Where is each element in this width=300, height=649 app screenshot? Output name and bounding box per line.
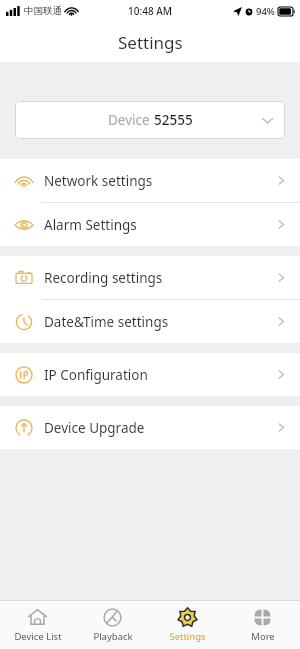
button[interactable]: More <box>225 601 300 649</box>
button[interactable]: Recording settings <box>0 256 300 299</box>
staticText: Recording settings <box>44 269 163 287</box>
button[interactable]: Playback <box>75 601 150 649</box>
staticText: Device Upgrade <box>44 419 145 437</box>
button[interactable]: Alarm Settings <box>0 203 300 246</box>
staticText: More <box>251 630 275 643</box>
staticText: Settings <box>118 31 183 54</box>
staticText: Alarm Settings <box>44 216 137 234</box>
staticText: 94% <box>256 5 275 18</box>
button[interactable]: IP Configuration <box>0 353 300 396</box>
staticText: Playback <box>93 630 133 643</box>
button[interactable]: Settings <box>150 601 225 649</box>
button[interactable]: Device List <box>0 601 75 649</box>
staticText: Device <box>108 111 154 129</box>
staticText: Date&Time settings <box>44 313 169 331</box>
button[interactable]: Device <box>15 101 285 139</box>
staticText: 10:48 AM <box>128 4 172 18</box>
button[interactable]: Date&Time settings <box>0 300 300 343</box>
staticText: IP Configuration <box>44 366 148 384</box>
staticText: Settings <box>169 630 206 643</box>
staticText: Device List <box>14 630 62 643</box>
staticText: Network settings <box>44 172 153 190</box>
button[interactable]: Network settings <box>0 159 300 202</box>
button[interactable]: Device Upgrade <box>0 406 300 449</box>
staticText: 52555 <box>154 111 193 129</box>
staticText: 中国联通 <box>24 5 62 17</box>
